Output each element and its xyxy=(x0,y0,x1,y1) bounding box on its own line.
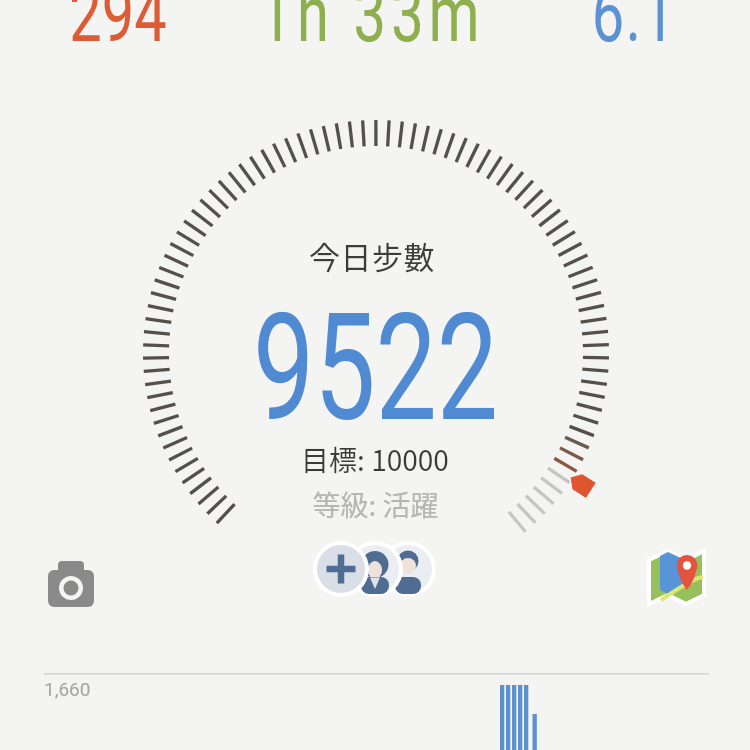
staticText: 目標: 10000 xyxy=(301,439,449,479)
button[interactable]: 294 xyxy=(0,0,250,74)
button[interactable] xyxy=(42,555,100,613)
staticText: 1,660 xyxy=(44,678,91,700)
button[interactable]: 6.1 xyxy=(500,0,750,74)
button[interactable] xyxy=(642,540,712,610)
staticText: 等級: 活躍 xyxy=(312,484,439,524)
button[interactable]: 1h 33m xyxy=(250,0,500,74)
staticText: 6.1 xyxy=(479,0,750,60)
staticText: 今日步數 xyxy=(309,233,435,273)
staticText: 9522 xyxy=(253,281,498,456)
staticText: 294 xyxy=(0,0,273,60)
staticText: 1h 33m xyxy=(217,0,527,60)
button[interactable] xyxy=(310,538,440,600)
